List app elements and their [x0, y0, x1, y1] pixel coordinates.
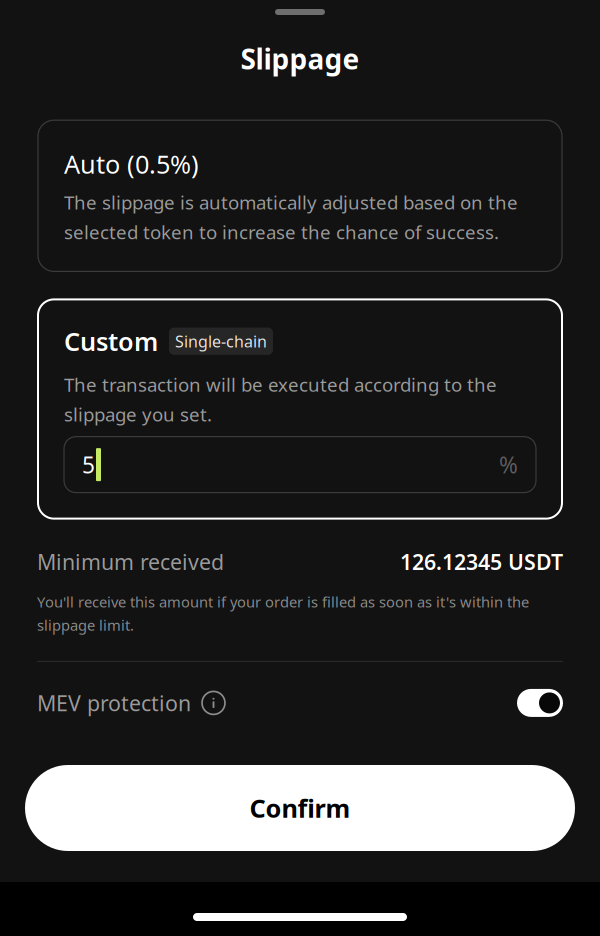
staticText: The transaction will be executed accordi… [64, 372, 497, 427]
staticText: Single-chain [175, 331, 267, 352]
staticText: You'll receive this amount if your order… [37, 592, 529, 635]
staticText: 5 [82, 450, 95, 480]
staticText: Confirm [249, 791, 350, 825]
button[interactable]: MEV protection toggle [517, 689, 563, 717]
staticText: % [499, 450, 518, 480]
staticText: Auto (0.5%) [64, 147, 199, 181]
staticText: Minimum received [37, 548, 224, 576]
button[interactable]: Confirm [25, 765, 575, 851]
button[interactable]: Auto (0.5%) [38, 120, 562, 271]
staticText: The slippage is automatically adjusted b… [64, 190, 518, 244]
staticText: 126.12345 USDT [400, 548, 563, 576]
button[interactable]: Custom [38, 299, 562, 519]
staticText: Slippage [240, 40, 359, 77]
staticText: Custom [64, 324, 158, 358]
staticText: MEV protection [37, 689, 191, 717]
